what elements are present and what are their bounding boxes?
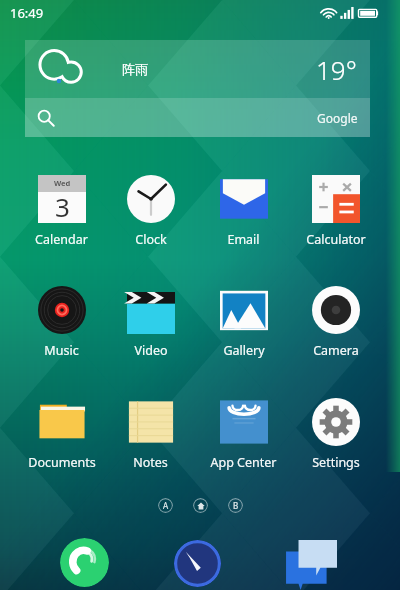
- staticText: Email: [227, 231, 260, 248]
- button[interactable]: 阵雨: [25, 40, 370, 98]
- button[interactable]: Browser: [174, 540, 221, 587]
- staticText: Wed: [54, 178, 71, 188]
- button[interactable]: Music: [23, 286, 100, 359]
- button[interactable]: Phone: [60, 538, 109, 587]
- button[interactable]: Clock: [112, 175, 189, 248]
- staticText: Calendar: [35, 231, 88, 248]
- staticText: Clock: [135, 231, 167, 248]
- button[interactable]: Page A: [158, 498, 173, 513]
- button[interactable]: Google: [25, 98, 370, 137]
- staticText: 3: [55, 189, 70, 220]
- button[interactable]: Messaging: [285, 538, 337, 590]
- button[interactable]: Documents: [23, 398, 100, 471]
- staticText: Gallery: [223, 342, 265, 359]
- staticText: App Center: [210, 454, 277, 471]
- button[interactable]: Video: [112, 286, 189, 359]
- staticText: Documents: [28, 454, 96, 471]
- staticText: 19°: [316, 52, 357, 87]
- staticText: A: [163, 500, 169, 511]
- staticText: Calculator: [306, 231, 366, 248]
- button[interactable]: Gallery: [205, 286, 282, 359]
- staticText: 阵雨: [122, 61, 148, 77]
- staticText: 16:49: [10, 4, 44, 22]
- button[interactable]: Home screen: [193, 498, 208, 513]
- button[interactable]: Camera: [297, 286, 374, 359]
- staticText: Settings: [312, 454, 360, 471]
- staticText: Video: [134, 342, 168, 359]
- staticText: Notes: [133, 454, 168, 471]
- staticText: B: [233, 500, 239, 511]
- staticText: Camera: [313, 342, 359, 359]
- button[interactable]: Page B: [228, 498, 243, 513]
- staticText: Music: [44, 342, 79, 359]
- button[interactable]: Notes: [112, 398, 189, 471]
- staticText: Google: [317, 110, 358, 126]
- button[interactable]: App Center: [205, 398, 282, 471]
- button[interactable]: Email: [205, 175, 282, 248]
- button[interactable]: Calculator: [297, 175, 374, 248]
- button[interactable]: Settings: [297, 398, 374, 471]
- button[interactable]: Wed: [23, 175, 100, 248]
